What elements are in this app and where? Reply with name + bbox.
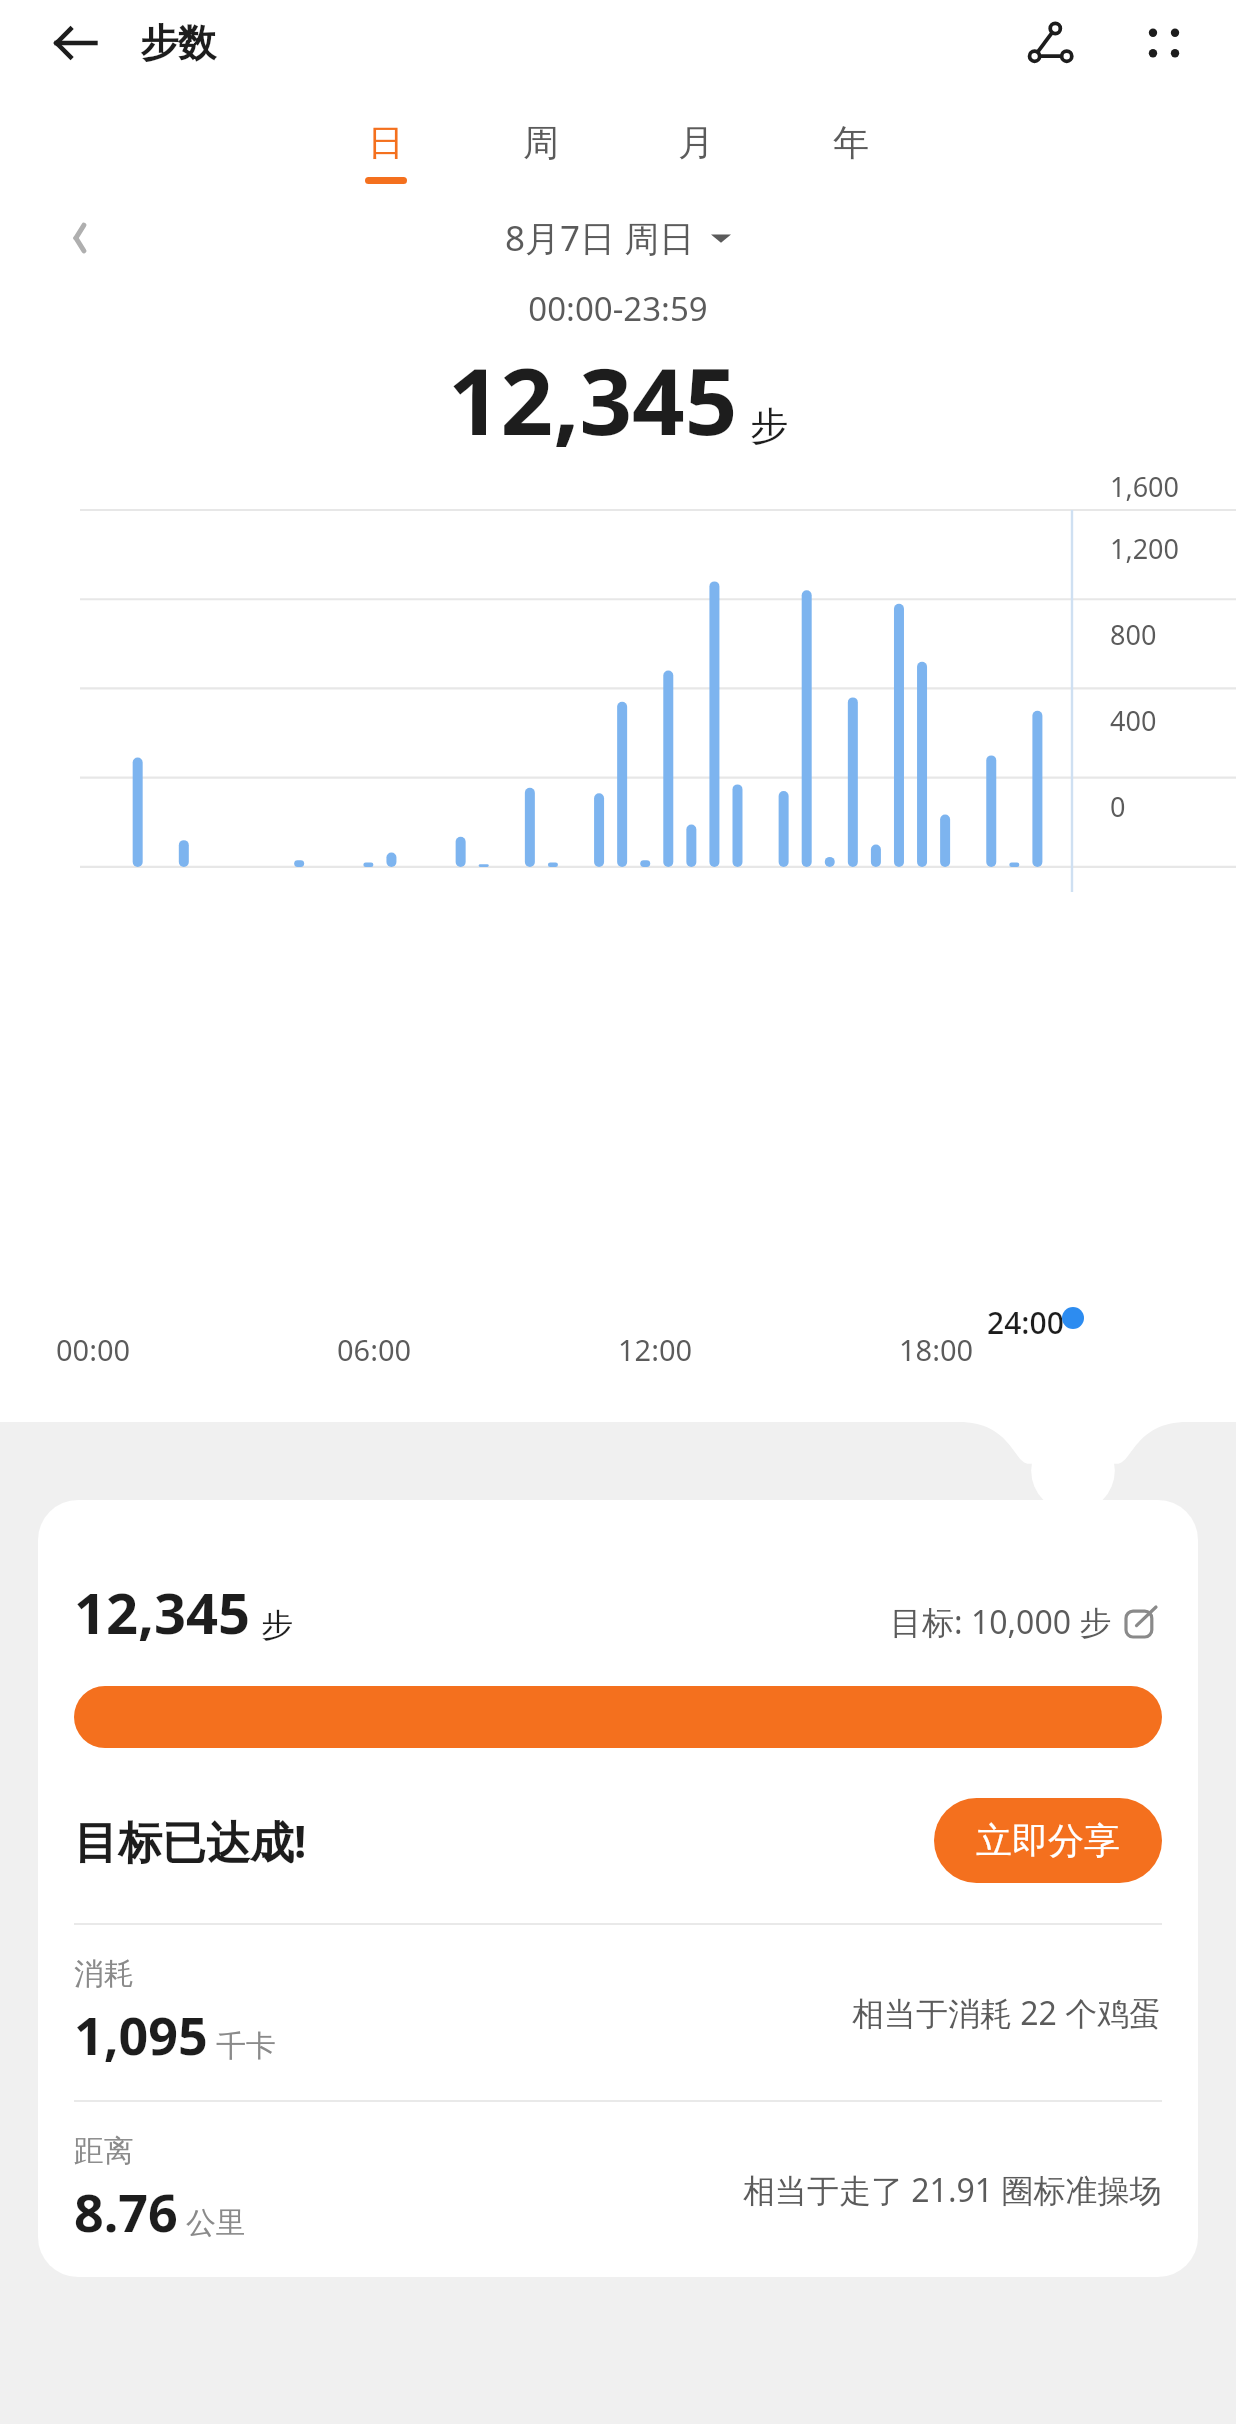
staticText: 年 [833, 120, 869, 165]
staticText: 800 [1110, 616, 1157, 653]
button[interactable]: More options [1126, 5, 1202, 81]
staticText: 相当于走了 21.91 圈标准操场 [743, 2168, 1162, 2212]
staticText: 00:00 [56, 1330, 337, 1369]
staticText: 8月7日 周日 [505, 214, 695, 262]
staticText: 400 [1110, 702, 1157, 739]
button[interactable]: Previous day [48, 206, 112, 270]
button[interactable]: 8月7日 周日 [489, 206, 747, 270]
button[interactable]: 月 [618, 114, 773, 190]
button[interactable]: Back [40, 7, 112, 79]
staticText: 1,095 [74, 1999, 208, 2070]
button[interactable]: 距离 [38, 2102, 1198, 2277]
staticText: 目标: 10,000 步 [890, 1600, 1112, 1644]
staticText: 千卡 [216, 2027, 276, 2065]
staticText: 距离 [74, 2132, 134, 2170]
staticText: 步数 [140, 19, 216, 67]
staticText: 目标已达成! [74, 1811, 307, 1871]
staticText: 12:00 [618, 1330, 899, 1369]
staticText: 月 [678, 120, 714, 165]
staticText: 12,345 [74, 1574, 251, 1650]
staticText: 12,345 [448, 337, 738, 462]
staticText: 周 [523, 120, 559, 165]
button[interactable]: 目标: 10,000 步 [884, 1594, 1162, 1650]
button[interactable]: 日 [308, 114, 463, 190]
staticText: 06:00 [337, 1330, 618, 1369]
staticText: 8.76 [74, 2176, 178, 2247]
staticText: 0 [1110, 788, 1126, 825]
button[interactable]: 消耗 [38, 1925, 1198, 2100]
staticText: 日 [368, 120, 404, 165]
staticText: 公里 [186, 2204, 246, 2242]
button[interactable]: 立即分享 [934, 1798, 1162, 1883]
button[interactable]: Share [1012, 5, 1088, 81]
staticText: 相当于消耗 22 个鸡蛋 [852, 1991, 1162, 2035]
staticText: 消耗 [74, 1955, 134, 1993]
staticText: 00:00-23:59 [0, 286, 1236, 331]
staticText: 1,600 [1110, 468, 1180, 505]
button[interactable]: 年 [773, 114, 928, 190]
staticText: 步 [750, 402, 788, 450]
staticText: 24:00 [987, 1302, 1064, 1343]
staticText: 1,200 [1110, 530, 1180, 567]
staticText: 立即分享 [976, 1818, 1120, 1863]
button[interactable]: 周 [463, 114, 618, 190]
staticText: 步 [261, 1605, 293, 1645]
staticText: 18:00 [899, 1330, 1180, 1369]
